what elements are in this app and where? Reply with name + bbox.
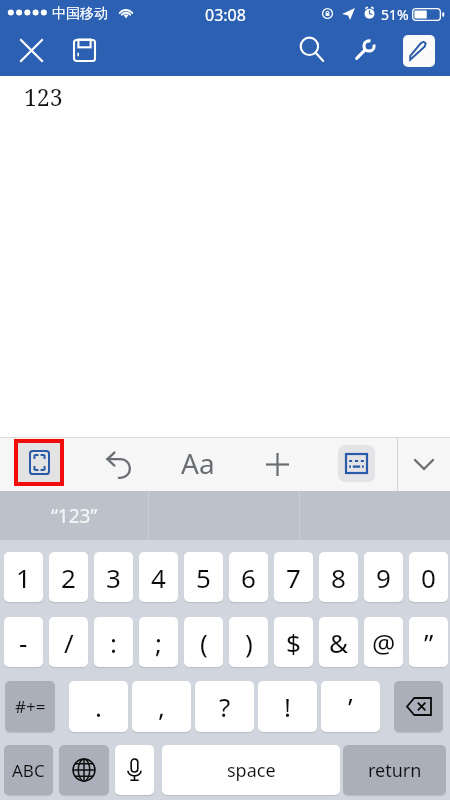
button[interactable]: Hide keyboard xyxy=(399,439,449,489)
button[interactable]: Switch language xyxy=(59,745,109,795)
button[interactable]: 7 xyxy=(274,552,313,602)
staticText: 6 xyxy=(241,560,256,595)
button[interactable]: ; xyxy=(139,617,178,667)
button[interactable]: . xyxy=(69,681,128,732)
button[interactable]: Dictation xyxy=(115,745,154,795)
staticText: 51% xyxy=(381,5,409,24)
button[interactable]: - xyxy=(4,617,43,667)
button[interactable]: 8 xyxy=(319,552,358,602)
staticText: - xyxy=(19,625,28,660)
button[interactable]: ” xyxy=(409,617,448,667)
staticText: 2 xyxy=(61,560,76,595)
staticText: ) xyxy=(245,625,253,660)
button[interactable]: Backspace xyxy=(394,681,443,732)
staticText: / xyxy=(64,625,74,660)
staticText: 8 xyxy=(331,560,346,595)
staticText: : xyxy=(110,625,117,660)
button[interactable]: Font xyxy=(173,438,223,488)
staticText: 3 xyxy=(106,560,121,595)
button[interactable]: Keyboard xyxy=(338,445,375,482)
button[interactable]: 3 xyxy=(94,552,133,602)
staticText: 123 xyxy=(24,81,63,112)
staticText: @ xyxy=(372,625,396,660)
staticText: ’ xyxy=(348,689,353,724)
button[interactable]: , xyxy=(132,681,191,732)
button[interactable]: “123” xyxy=(0,491,148,540)
button[interactable]: ( xyxy=(184,617,223,667)
button[interactable]: 0 xyxy=(409,552,448,602)
button[interactable]: ? xyxy=(195,681,254,732)
staticText: 7 xyxy=(286,560,301,595)
staticText: “123” xyxy=(51,503,98,529)
button[interactable]: ! xyxy=(258,681,317,732)
button[interactable]: : xyxy=(94,617,133,667)
button[interactable]: & xyxy=(319,617,358,667)
button[interactable]: Edit xyxy=(403,35,435,67)
button[interactable]: ’ xyxy=(321,681,380,732)
button[interactable]: 9 xyxy=(364,552,403,602)
button[interactable]: 2 xyxy=(49,552,88,602)
staticText: & xyxy=(329,625,349,660)
button[interactable]: ABC xyxy=(4,745,53,795)
staticText: 03:08 xyxy=(205,4,246,26)
staticText: $ xyxy=(286,625,301,660)
staticText: return xyxy=(368,758,422,783)
staticText: ! xyxy=(284,689,291,724)
button[interactable]: Selection xyxy=(18,443,60,482)
staticText: ” xyxy=(424,625,434,660)
staticText: 9 xyxy=(376,560,391,595)
staticText: ; xyxy=(155,625,162,660)
staticText: Aa xyxy=(181,444,215,482)
button[interactable]: return xyxy=(343,745,446,795)
staticText: 0 xyxy=(421,560,436,595)
button[interactable]: #+= xyxy=(5,681,55,732)
button[interactable]: Tools xyxy=(345,30,385,70)
button[interactable]: Insert xyxy=(252,439,302,489)
staticText: 1 xyxy=(16,560,31,595)
staticText: space xyxy=(227,758,276,783)
button[interactable]: / xyxy=(49,617,88,667)
button[interactable]: Close xyxy=(13,32,49,68)
button[interactable]: 5 xyxy=(184,552,223,602)
staticText: 5 xyxy=(196,560,211,595)
staticText: #+= xyxy=(15,695,46,718)
button[interactable]: 1 xyxy=(4,552,43,602)
button[interactable]: @ xyxy=(364,617,403,667)
button[interactable]: Save xyxy=(66,32,102,68)
staticText: . xyxy=(95,689,102,724)
button[interactable]: 4 xyxy=(139,552,178,602)
staticText: ? xyxy=(219,689,231,724)
button[interactable]: 6 xyxy=(229,552,268,602)
button[interactable]: ) xyxy=(229,617,268,667)
staticText: ABC xyxy=(12,759,45,782)
staticText: ( xyxy=(200,625,208,660)
staticText: 中国移动 xyxy=(52,5,108,23)
staticText: 4 xyxy=(151,560,166,595)
staticText: , xyxy=(158,689,165,724)
button[interactable]: $ xyxy=(274,617,313,667)
button[interactable]: Search xyxy=(292,30,332,70)
button[interactable]: Undo xyxy=(95,439,145,489)
button[interactable]: space xyxy=(162,745,340,795)
